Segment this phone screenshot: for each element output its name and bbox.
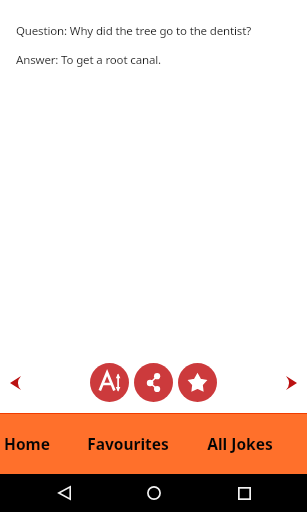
button[interactable]: Change text size	[90, 363, 129, 402]
button[interactable]: Recents	[199, 474, 289, 512]
staticText: Answer: To get a root canal.	[16, 52, 161, 68]
staticText: Home	[4, 433, 50, 454]
button[interactable]: Favourites	[53, 414, 203, 474]
button[interactable]: Back	[19, 474, 109, 512]
button[interactable]: Home	[109, 474, 199, 512]
staticText: All Jokes	[207, 433, 273, 454]
staticText: Question: Why did the tree go to the den…	[16, 23, 252, 39]
button[interactable]: Home	[0, 414, 53, 474]
button[interactable]: Next joke	[276, 359, 307, 405]
button[interactable]: All Jokes	[203, 414, 307, 474]
staticText: Favourites	[87, 433, 169, 454]
button[interactable]: Previous joke	[0, 359, 31, 405]
button[interactable]: Share	[134, 363, 173, 402]
button[interactable]: Favourite	[178, 363, 217, 402]
